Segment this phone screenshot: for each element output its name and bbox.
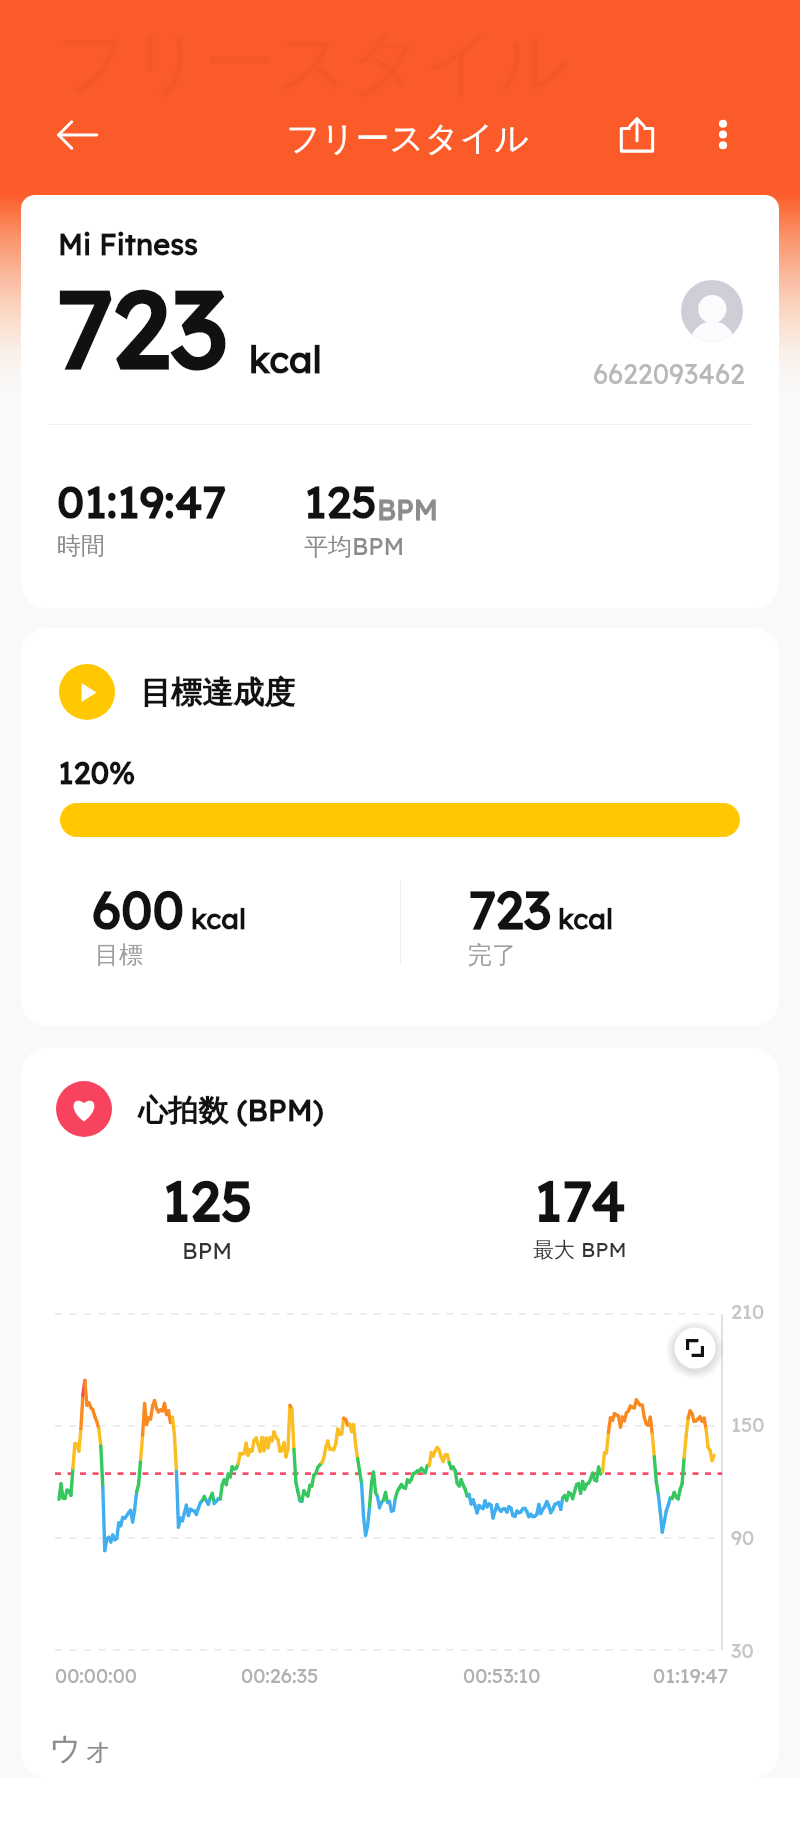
staticText: BPM [182,1236,233,1265]
staticText: 210 [731,1299,765,1324]
button[interactable]: Expand chart [669,1322,721,1374]
staticText: 723 [468,877,552,942]
button[interactable]: Share [606,103,668,165]
staticText: 目標 [95,940,143,970]
staticText: kcal [558,901,614,936]
staticText: 完了 [468,940,516,970]
button[interactable]: Back [46,104,108,166]
staticText: フリースタイル [286,117,529,160]
staticText: 125 [162,1165,253,1235]
staticText: 723 [55,260,228,395]
staticText: 120% [58,753,136,792]
staticText: Mi Fitness [58,226,198,262]
staticText: 00:53:10 [463,1663,541,1688]
staticText: 01:19:47 [57,473,227,529]
staticText: 90 [731,1525,755,1550]
staticText: ウォ [49,1728,115,1768]
staticText: 174 [534,1165,626,1235]
staticText: 125 [304,473,377,529]
staticText: 600 [92,877,185,942]
staticText: 6622093462 [593,357,745,391]
button[interactable]: More options [692,103,754,165]
staticText: 時間 [57,531,105,561]
staticText: 00:00:00 [55,1663,137,1688]
staticText: kcal [249,336,322,382]
staticText: kcal [191,901,247,936]
staticText: 00:26:35 [241,1663,319,1688]
staticText: 心拍数 (BPM) [138,1091,324,1130]
staticText: 目標達成度 [140,673,295,712]
staticText: 平均BPM [304,531,405,562]
staticText: 150 [731,1412,765,1437]
staticText: 最大 BPM [533,1236,627,1263]
staticText: 01:19:47 [653,1663,729,1688]
staticText: BPM [377,492,439,527]
staticText: 30 [731,1638,754,1663]
